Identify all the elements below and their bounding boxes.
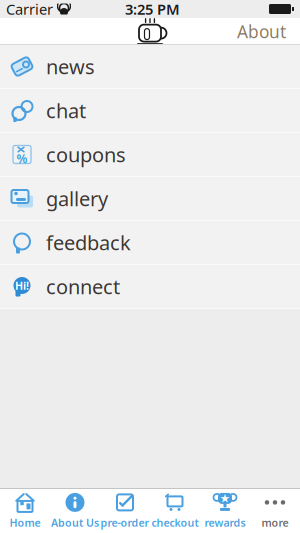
staticText: rewards: [204, 515, 245, 530]
staticText: checkout: [151, 515, 198, 530]
staticText: ★: [219, 492, 230, 505]
staticText: %: [16, 150, 27, 166]
staticText: Home: [9, 515, 40, 530]
button[interactable]: About: [227, 14, 296, 49]
staticText: gallery: [46, 185, 108, 212]
staticText: pre-order: [100, 515, 149, 530]
button[interactable]: gallery: [0, 177, 300, 221]
button[interactable]: ★: [200, 489, 250, 533]
staticText: Hi!: [15, 278, 29, 293]
staticText: chat: [46, 97, 86, 124]
staticText: Carrier: [6, 0, 53, 19]
staticText: more: [261, 515, 288, 530]
button[interactable]: chat: [0, 89, 300, 133]
staticText: 3:25 PM: [125, 0, 180, 19]
button[interactable]: news: [0, 45, 300, 89]
button[interactable]: Hi!: [0, 265, 300, 309]
staticText: coupons: [46, 141, 126, 168]
staticText: connect: [46, 273, 120, 300]
button[interactable]: feedback: [0, 221, 300, 265]
staticText: About: [237, 20, 286, 43]
staticText: feedback: [46, 229, 131, 256]
button[interactable]: About Us: [50, 489, 100, 533]
button[interactable]: pre-order: [100, 489, 150, 533]
staticText: news: [46, 53, 95, 80]
button[interactable]: checkout: [150, 489, 200, 533]
staticText: About Us: [51, 515, 99, 530]
button[interactable]: Home: [0, 489, 50, 533]
button[interactable]: more: [250, 489, 300, 533]
button[interactable]: %: [0, 133, 300, 177]
